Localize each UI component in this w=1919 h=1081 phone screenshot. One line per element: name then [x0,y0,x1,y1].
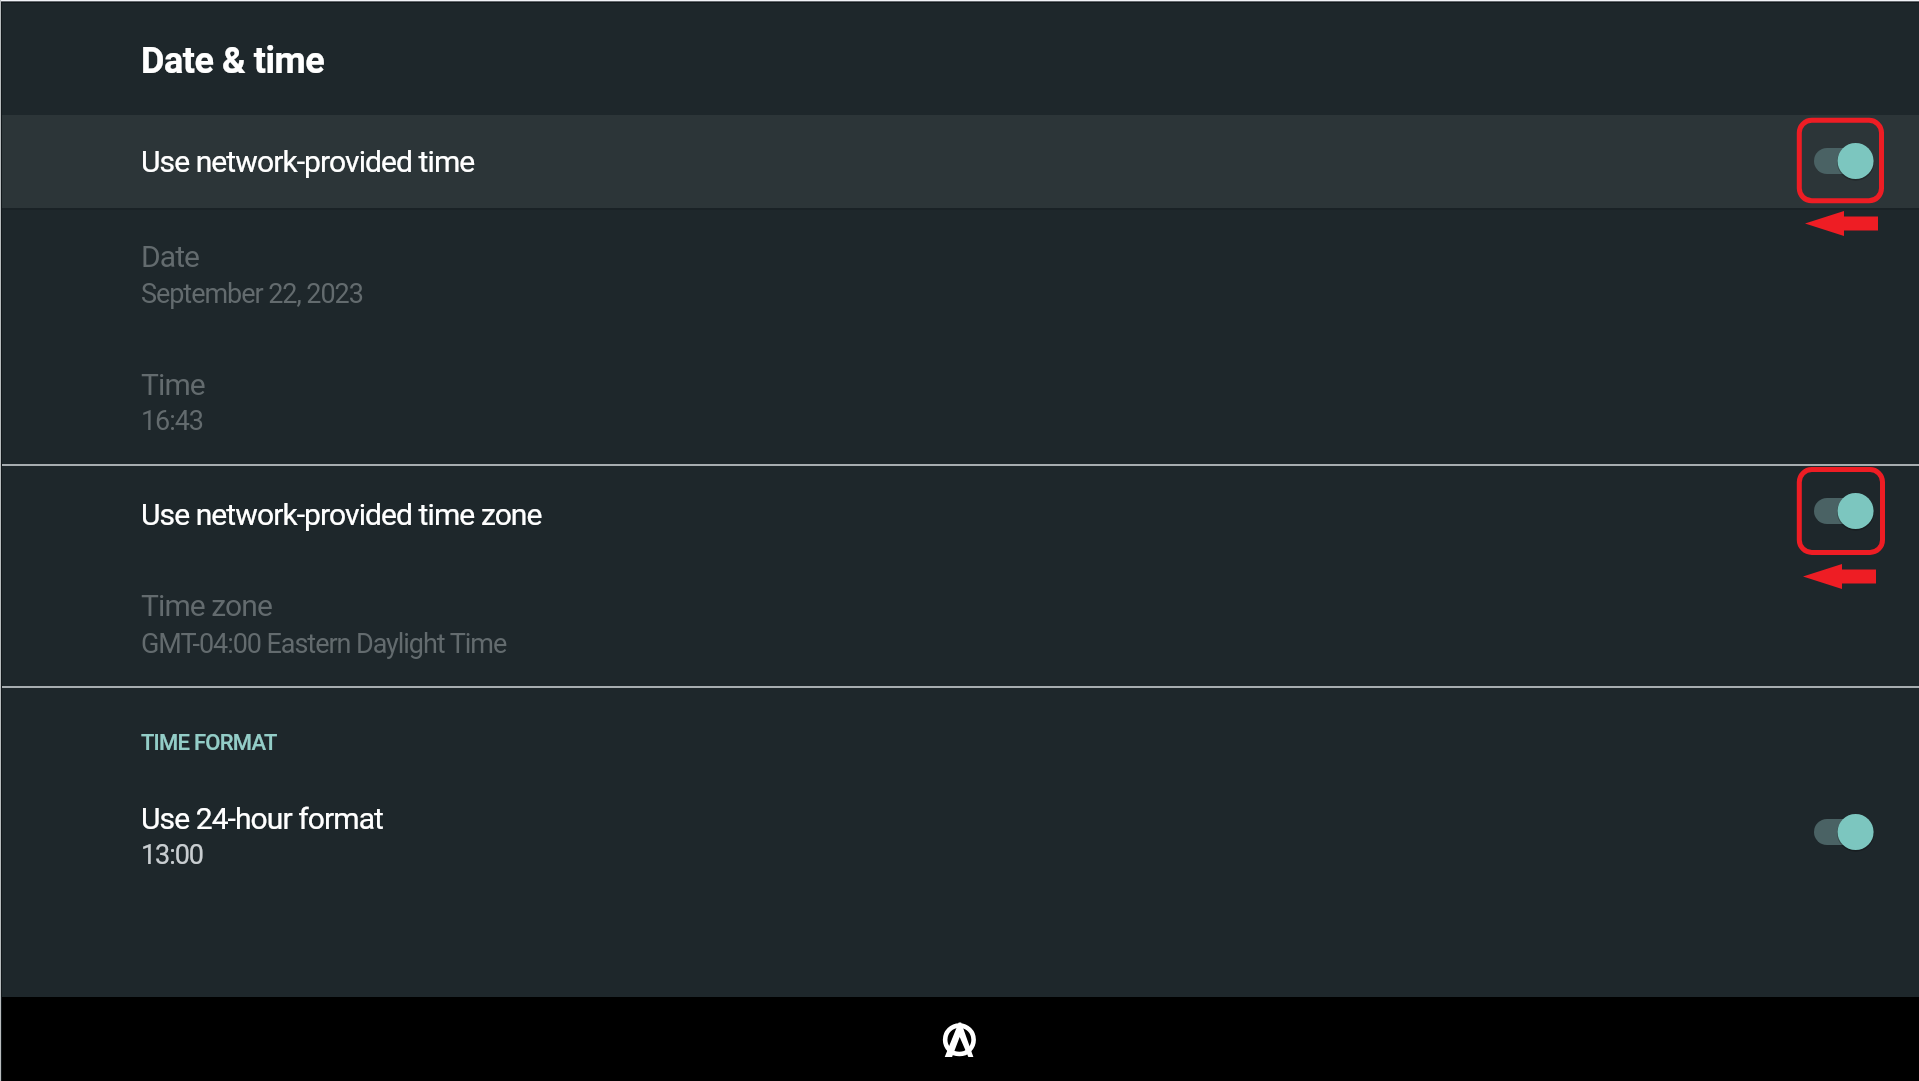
staticText: Date [141,239,200,274]
staticText: 13:00 [141,839,203,871]
staticText: September 22, 2023 [141,278,363,310]
button[interactable]: Use network-provided time zone, on [1806,485,1882,537]
button[interactable]: Use 24-hour format [0,790,1919,882]
button[interactable]: Use network-provided time, on [1806,135,1882,187]
button[interactable]: Use 24-hour format, on [1806,806,1882,858]
staticText: Use network-provided time [141,144,475,179]
button[interactable]: Time [0,335,1919,464]
staticText: GMT-04:00 Eastern Daylight Time [141,628,507,660]
staticText: Date & time [141,40,325,82]
staticText: TIME FORMAT [141,730,277,756]
staticText: Use 24-hour format [141,801,384,836]
staticText: Use network-provided time zone [141,497,542,532]
button[interactable]: Use network-provided time [0,115,1919,208]
button[interactable]: Time zone [0,558,1919,686]
staticText: Time [141,367,205,402]
staticText: 16:43 [141,405,203,437]
staticText: Time zone [141,588,272,623]
button[interactable]: Date [0,207,1919,335]
button[interactable]: Use network-provided time zone [0,466,1919,558]
